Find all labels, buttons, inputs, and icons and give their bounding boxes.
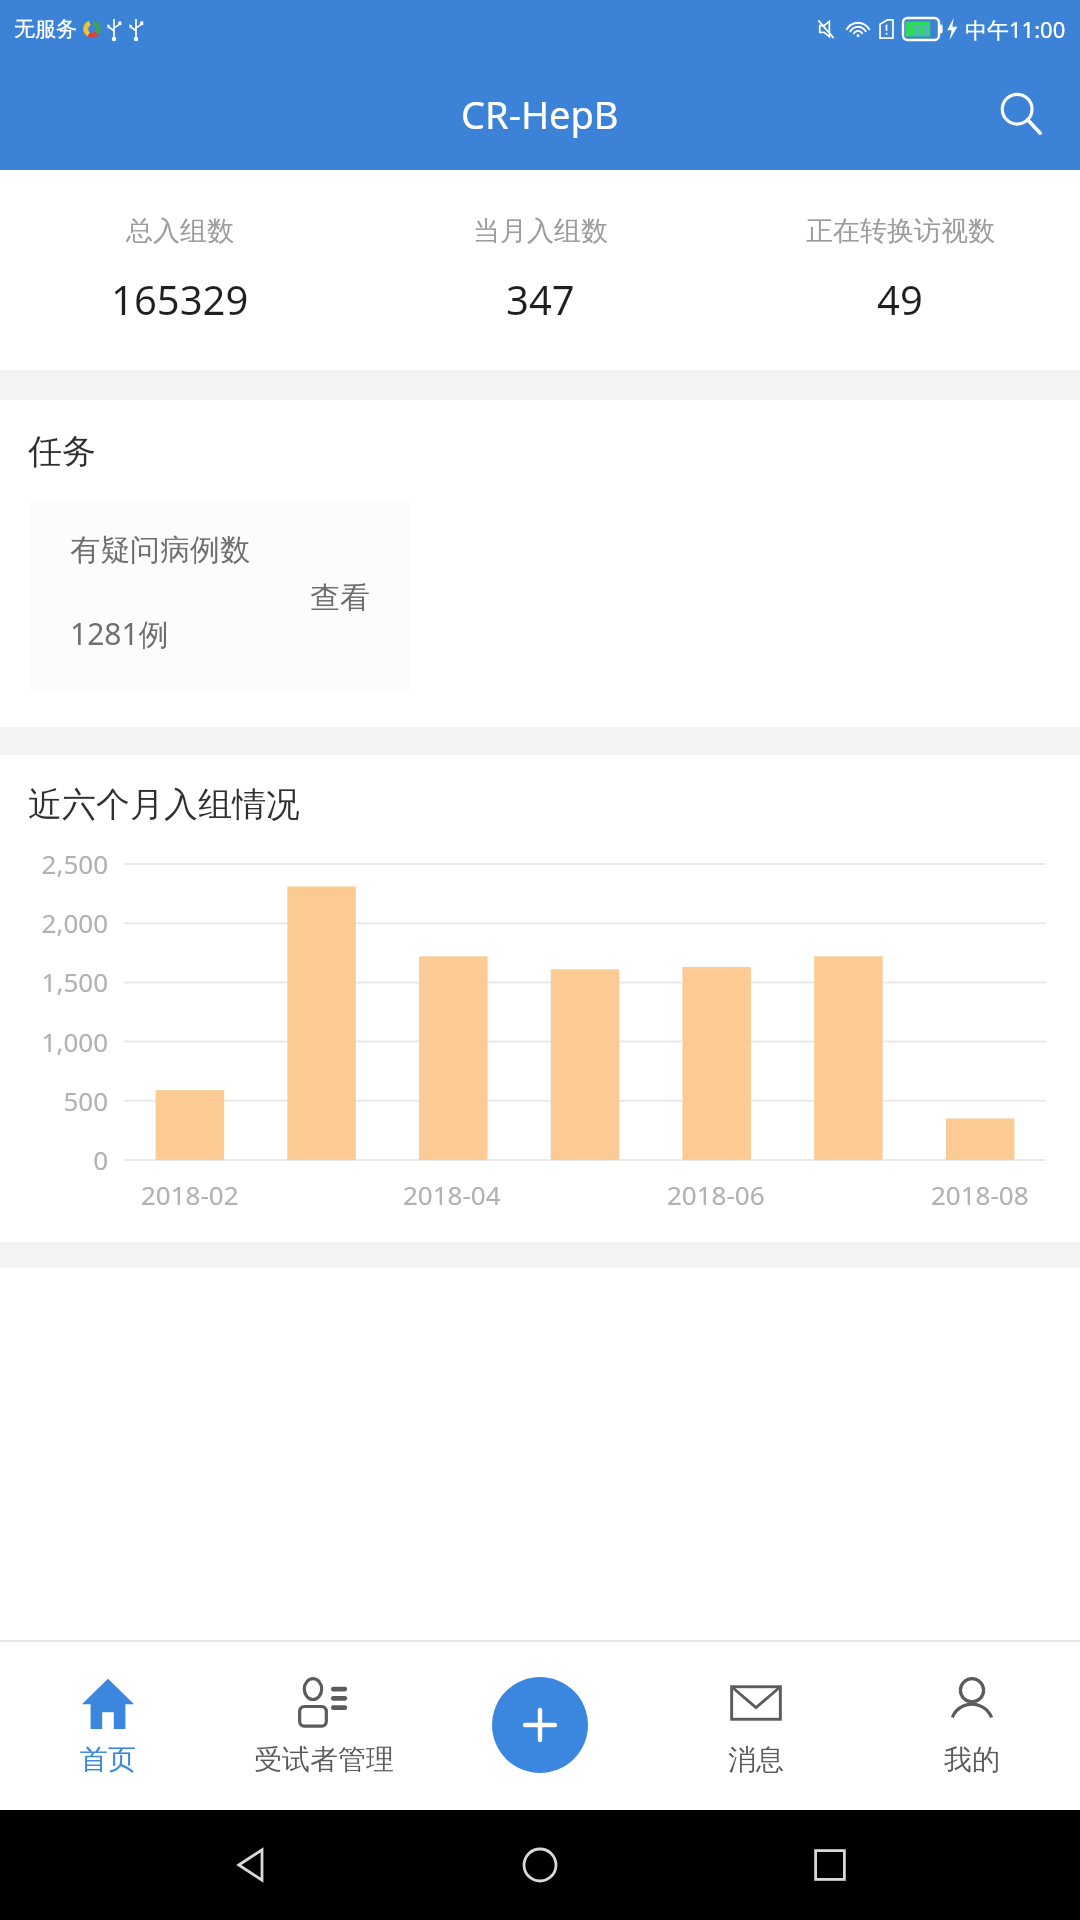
staticText: 我的 [944, 1742, 1000, 1777]
staticText: 1281例 [70, 613, 169, 654]
staticText: 1,500 [0, 964, 108, 999]
button[interactable]: 有疑问病例数 [30, 501, 410, 691]
staticText: 2,500 [0, 846, 108, 881]
staticText: 近六个月入组情况 [28, 783, 300, 826]
staticText: 有疑问病例数 [70, 531, 250, 569]
staticText: 当月入组数 [473, 214, 608, 248]
button[interactable]: Add [492, 1677, 588, 1773]
staticText: 查看 [310, 579, 370, 617]
staticText: 中午11:00 [965, 14, 1066, 44]
staticText: CR-HepB [461, 88, 619, 140]
staticText: 1,000 [0, 1024, 108, 1059]
staticText: 正在转换访视数 [806, 214, 995, 248]
button[interactable]: Recent apps [790, 1825, 870, 1905]
staticText: 2018-06 [667, 1177, 765, 1212]
staticText: 无服务 [14, 16, 77, 42]
staticText: 33 [913, 20, 930, 39]
button[interactable]: 当月入组数 [360, 170, 720, 370]
staticText: 2018-04 [403, 1177, 501, 1212]
staticText: 受试者管理 [254, 1742, 394, 1777]
button[interactable]: 我的 [864, 1640, 1080, 1810]
staticText: 49 [877, 272, 923, 326]
staticText: 任务 [28, 430, 96, 473]
button[interactable]: 正在转换访视数 [720, 170, 1080, 370]
button[interactable]: 首页 [0, 1640, 216, 1810]
staticText: 2,000 [0, 905, 108, 940]
staticText: 0 [0, 1142, 108, 1177]
staticText: 总入组数 [126, 214, 234, 248]
button[interactable]: 消息 [648, 1640, 864, 1810]
staticText: 2018-08 [931, 1177, 1029, 1212]
staticText: 165329 [111, 272, 249, 326]
button[interactable]: Back [210, 1825, 290, 1905]
staticText: 消息 [728, 1742, 784, 1777]
button[interactable]: 总入组数 [0, 170, 360, 370]
button[interactable]: 受试者管理 [216, 1640, 432, 1810]
button[interactable]: Home [500, 1825, 580, 1905]
staticText: 500 [0, 1083, 108, 1118]
staticText: 2018-02 [141, 1177, 239, 1212]
staticText: 首页 [80, 1742, 136, 1777]
staticText: 347 [506, 272, 575, 326]
button[interactable]: Search [990, 83, 1052, 145]
